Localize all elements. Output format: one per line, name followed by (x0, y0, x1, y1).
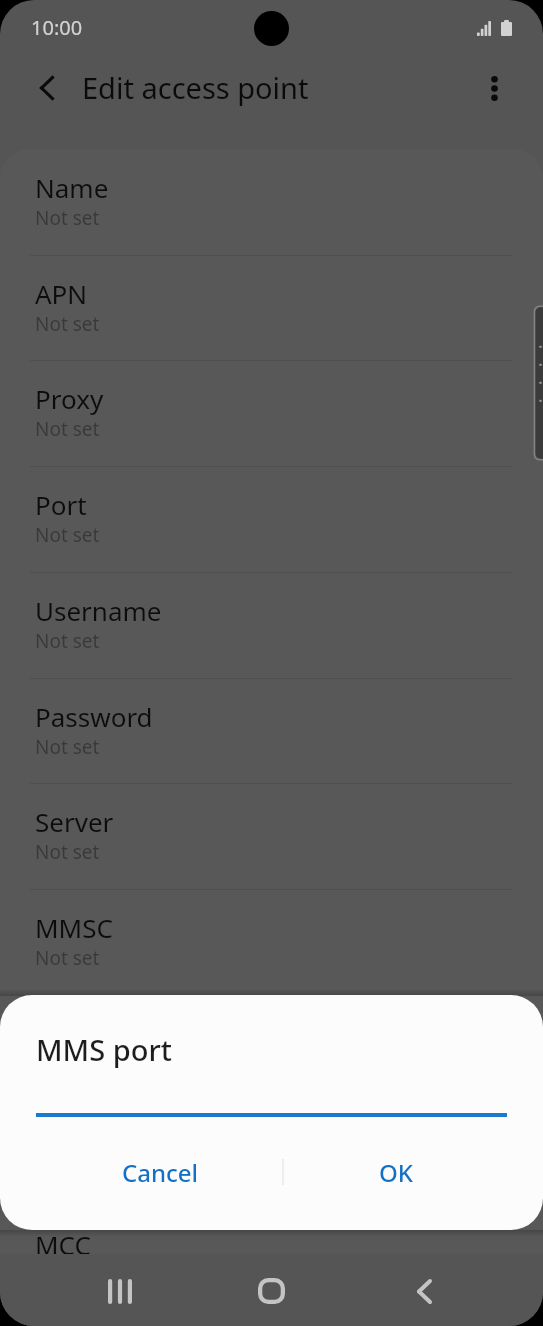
staticText: Not set (35, 522, 100, 548)
button[interactable]: MMS proxy (0, 995, 543, 1101)
staticText: Name (35, 170, 109, 205)
button[interactable]: Name (0, 149, 543, 255)
staticText: Not set (35, 734, 100, 760)
button[interactable]: Username (0, 572, 543, 678)
button[interactable]: MMS port (0, 1100, 543, 1206)
button[interactable]: OK (300, 1138, 492, 1206)
staticText: Password (35, 699, 153, 734)
staticText: Server (35, 804, 114, 839)
staticText: MMSC (35, 910, 113, 945)
staticText: Edit access point (82, 68, 309, 107)
button[interactable]: Server (0, 783, 543, 889)
staticText: Not set (35, 1051, 100, 1077)
staticText: OK (379, 1156, 413, 1189)
staticText: Cancel (122, 1156, 199, 1189)
button[interactable]: More options (463, 57, 525, 119)
staticText: MMS proxy (35, 1016, 172, 1051)
button[interactable]: Cancel (64, 1138, 256, 1206)
button[interactable]: APN (0, 255, 543, 361)
staticText: Not set (35, 628, 100, 654)
button[interactable]: Port (0, 466, 543, 572)
button[interactable]: MCC (0, 1206, 543, 1254)
staticText: Not set (35, 839, 100, 865)
staticText: Proxy (35, 381, 104, 416)
staticText: Not set (35, 945, 100, 971)
staticText: APN (35, 276, 88, 311)
staticText: Port (35, 487, 87, 522)
button[interactable]: MMSC (0, 889, 543, 995)
button[interactable]: Proxy (0, 360, 543, 466)
button[interactable]: Navigate up (16, 57, 78, 119)
staticText: Username (35, 593, 162, 628)
button[interactable]: Password (0, 678, 543, 784)
staticText: Not set (35, 416, 100, 442)
staticText: MMS port (36, 1030, 172, 1069)
staticText: MCC (35, 1227, 91, 1254)
staticText: Not set (35, 311, 100, 337)
button[interactable]: Recent apps (75, 1254, 165, 1326)
button[interactable]: Back (378, 1254, 468, 1326)
button[interactable]: Home (226, 1254, 316, 1326)
staticText: Not set (35, 205, 100, 231)
staticText: 10:00 (31, 14, 83, 41)
other: Scroll bar (534, 306, 543, 460)
